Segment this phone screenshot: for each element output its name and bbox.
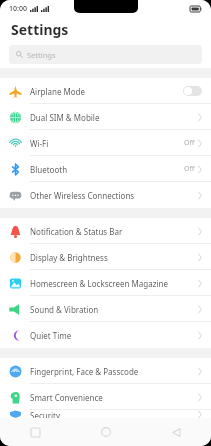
staticText: Wi-Fi [30,138,184,149]
staticText: Smart Convenience [30,392,198,403]
button[interactable]: Smart Convenience [0,384,211,410]
button[interactable]: Display & Brightness [0,244,211,270]
button[interactable]: Home [93,419,119,445]
staticText: Airplane Mode [30,86,183,97]
staticText: Settings [27,50,56,60]
button[interactable]: Airplane Mode toggle [183,86,202,96]
button[interactable]: Fingerprint, Face & Passcode [0,358,211,384]
staticText: Homescreen & Lockscreen Magazine [30,278,198,289]
staticText: Fingerprint, Face & Passcode [30,366,198,377]
button[interactable]: Airplane Mode [0,78,211,104]
button[interactable]: Recent apps [22,419,48,445]
button[interactable]: Wi-Fi [0,130,211,156]
staticText: Off [184,138,195,148]
staticText: Bluetooth [30,164,184,175]
button[interactable]: Dual SIM & Mobile [0,104,211,130]
staticText: Other Wireless Connections [30,190,198,201]
staticText: Security [30,410,198,418]
button[interactable]: Back [163,419,189,445]
staticText: Quiet Time [30,330,198,341]
button[interactable]: Security [0,410,211,418]
button[interactable]: Settings [9,45,202,64]
button[interactable]: Bluetooth [0,156,211,182]
button[interactable]: Other Wireless Connections [0,182,211,208]
staticText: 10:00 [9,4,27,14]
staticText: Dual SIM & Mobile [30,112,198,123]
button[interactable]: Homescreen & Lockscreen Magazine [0,270,211,296]
button[interactable]: Notification & Status Bar [0,218,211,244]
staticText: Settings [11,20,69,39]
staticText: Display & Brightness [30,252,198,263]
button[interactable]: Sound & Vibration [0,296,211,322]
staticText: Notification & Status Bar [30,226,198,237]
staticText: Sound & Vibration [30,304,198,315]
staticText: Off [184,164,195,174]
button[interactable]: Quiet Time [0,322,211,348]
